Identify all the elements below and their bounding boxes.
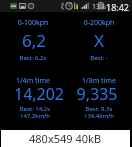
staticText: 6,2	[1, 29, 67, 52]
staticText: X	[66, 29, 132, 52]
staticText: 134,4km/h	[66, 112, 132, 120]
staticText: Best: 9,3s	[66, 105, 132, 113]
button[interactable]: 1/4m time	[0, 72, 66, 130]
staticText: 147,2km/h	[2, 112, 68, 120]
staticText: 0-100kph	[0, 18, 66, 28]
staticText: 14,202	[6, 83, 72, 105]
staticText: Best: 14,2s	[2, 105, 68, 113]
staticText: 0-200kph	[66, 18, 132, 28]
button[interactable]: 0-100kph	[0, 14, 66, 72]
staticText: Best: -	[66, 54, 132, 62]
staticText: 9,335	[64, 83, 130, 105]
staticText: 18:42	[106, 1, 130, 13]
staticText: Best: 6,2s	[0, 54, 66, 62]
staticText: 1/8m time	[66, 76, 132, 86]
staticText: 480x549 40kB	[29, 131, 102, 146]
staticText: 1/4m time	[0, 76, 66, 86]
button[interactable]: 0-200kph	[66, 14, 132, 72]
button[interactable]: 1/8m time	[66, 72, 132, 130]
staticText: 13%	[92, 2, 106, 12]
